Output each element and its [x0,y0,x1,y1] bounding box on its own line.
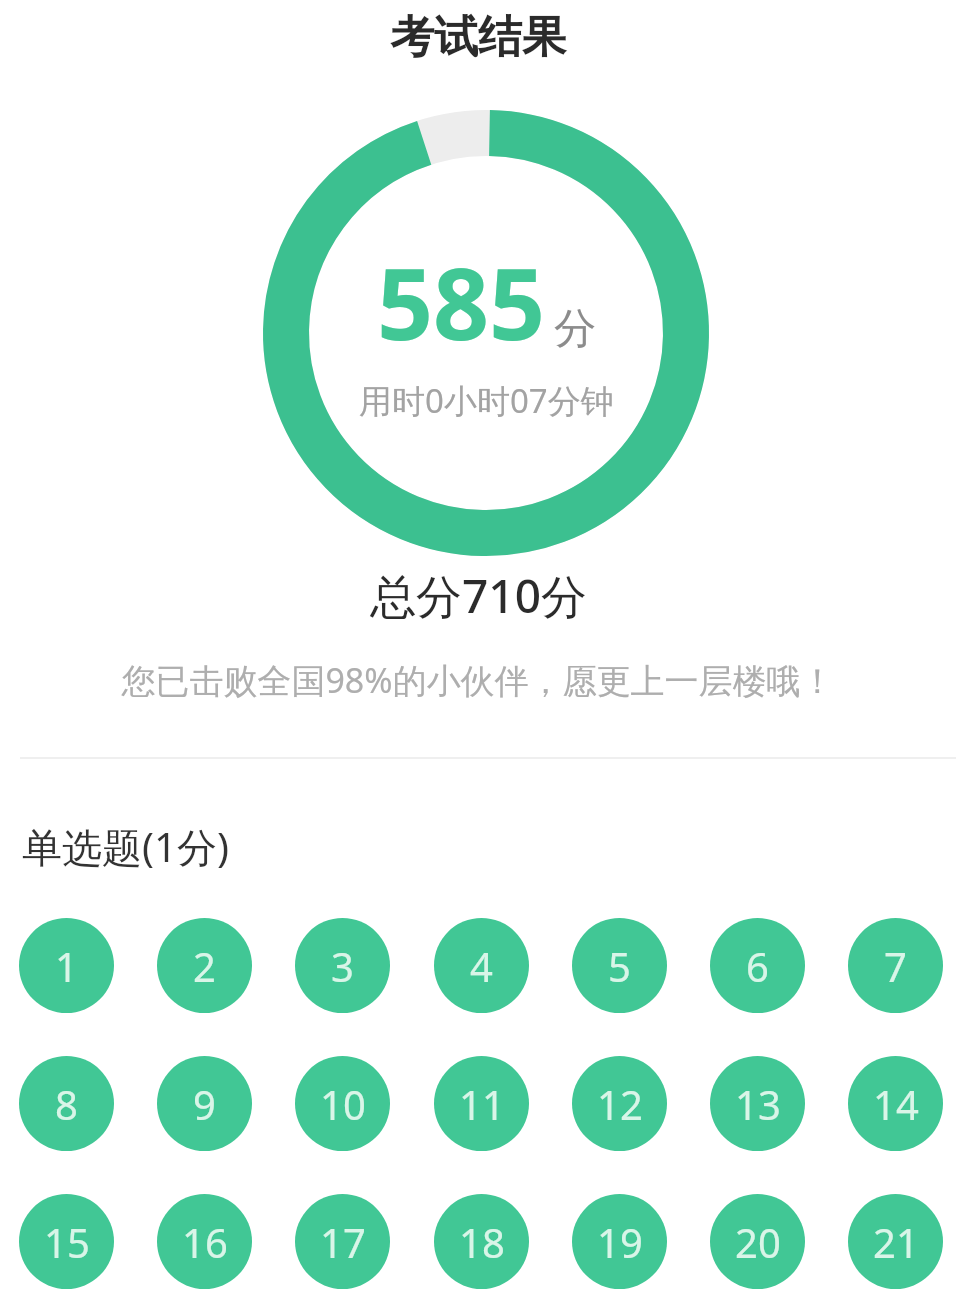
button[interactable]: 1 [19,918,114,1013]
button[interactable]: 19 [572,1194,667,1289]
staticText: 14 [873,1077,919,1131]
button[interactable]: 13 [710,1056,805,1151]
staticText: 19 [597,1215,643,1269]
button[interactable]: 7 [848,918,943,1013]
staticText: 5 [608,939,631,993]
button[interactable]: 17 [295,1194,390,1289]
staticText: 总分710分 [370,564,587,627]
staticText: 16 [182,1215,228,1269]
staticText: 1 [55,939,78,993]
staticText: 3 [331,939,354,993]
staticText: 11 [459,1077,505,1131]
staticText: 4 [470,939,493,993]
staticText: 您已击败全国98%的小伙伴，愿更上一层楼哦！ [121,657,835,703]
staticText: 2 [193,939,216,993]
button[interactable]: 11 [434,1056,529,1151]
button[interactable]: 16 [157,1194,252,1289]
button[interactable]: 4 [434,918,529,1013]
button[interactable]: 8 [19,1056,114,1151]
button[interactable]: 15 [19,1194,114,1289]
staticText: 15 [44,1215,90,1269]
staticText: 18 [459,1215,505,1269]
staticText: 17 [320,1215,366,1269]
button[interactable]: 14 [848,1056,943,1151]
button[interactable]: 2 [157,918,252,1013]
staticText: 9 [193,1077,216,1131]
staticText: 20 [735,1215,781,1269]
button[interactable]: 18 [434,1194,529,1289]
staticText: 21 [873,1215,919,1269]
staticText: 585 [377,235,546,368]
staticText: 10 [320,1077,366,1131]
staticText: 考试结果 [390,10,566,65]
button[interactable]: 20 [710,1194,805,1289]
button[interactable]: 9 [157,1056,252,1151]
staticText: 单选题(1分) [22,819,229,874]
staticText: 12 [597,1077,643,1131]
staticText: 6 [746,939,769,993]
staticText: 用时0小时07分钟 [359,378,614,423]
staticText: 分 [554,303,596,356]
button[interactable]: 5 [572,918,667,1013]
staticText: 13 [735,1077,781,1131]
button[interactable]: 3 [295,918,390,1013]
button[interactable]: 6 [710,918,805,1013]
button[interactable]: 21 [848,1194,943,1289]
staticText: 7 [884,939,907,993]
button[interactable]: 12 [572,1056,667,1151]
button[interactable]: 10 [295,1056,390,1151]
staticText: 8 [55,1077,78,1131]
